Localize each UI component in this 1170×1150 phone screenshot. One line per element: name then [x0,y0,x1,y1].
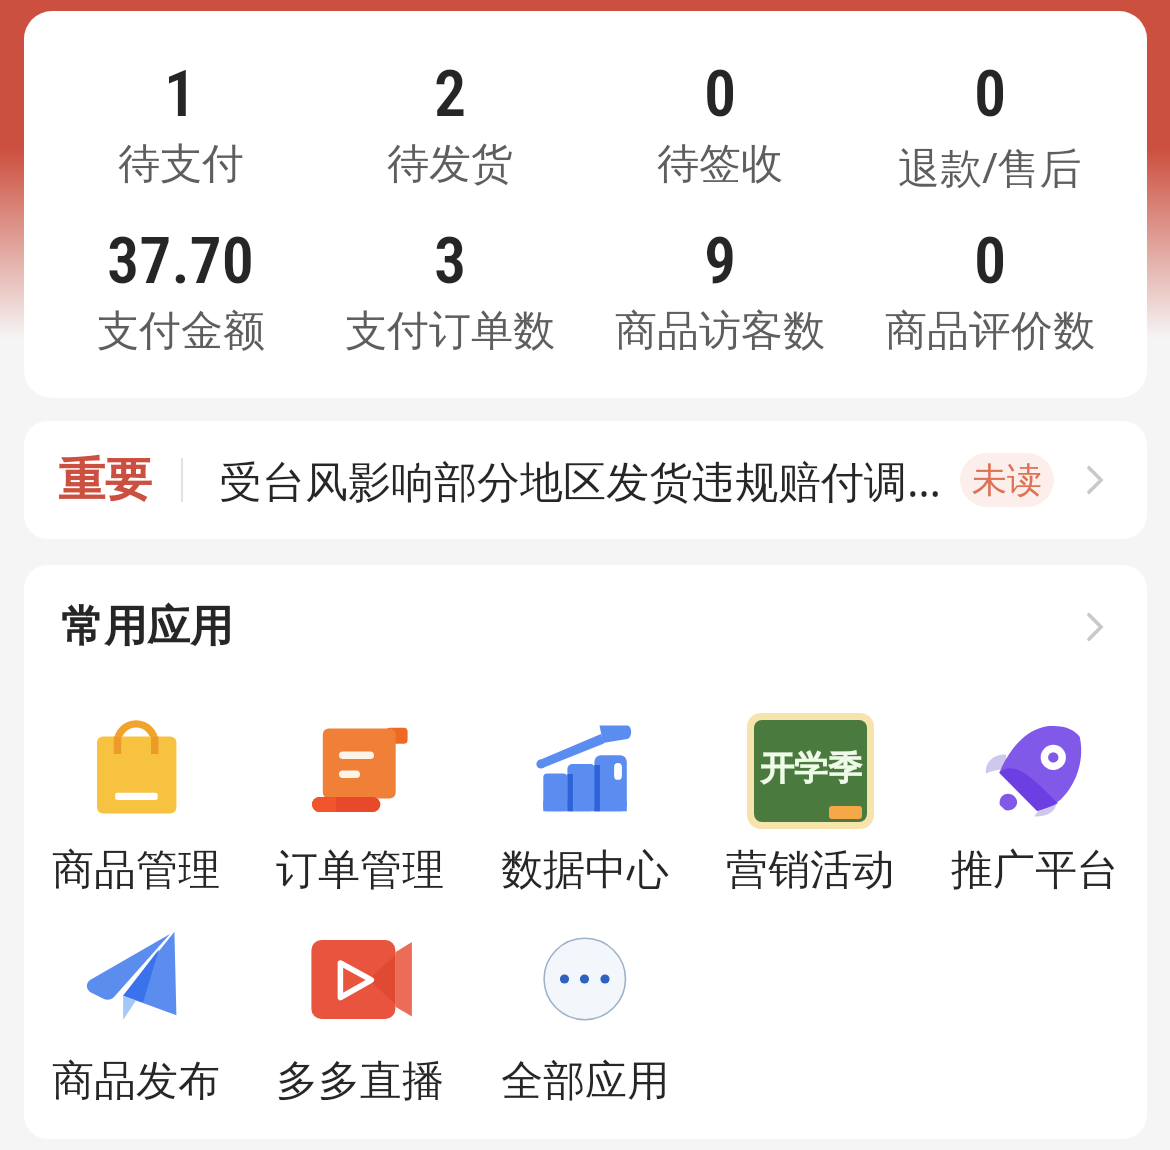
staticText: 推广平台 [951,844,1119,897]
staticText: 待签收 [657,138,783,191]
button[interactable]: 0 [585,57,855,191]
staticText: 商品评价数 [885,305,1095,358]
button[interactable]: 数据中心 [472,717,697,897]
staticText: 全部应用 [501,1055,669,1108]
staticText: 支付金额 [97,305,265,358]
button[interactable]: 重要 [24,421,1147,539]
staticText: 0 [704,57,737,132]
button[interactable]: 推广平台 [922,717,1147,897]
staticText: 退款/售后 [898,138,1082,195]
staticText: 支付订单数 [345,305,555,358]
staticText: 常用应用 [61,600,233,654]
button[interactable]: 1 [46,57,315,191]
staticText: 0 [974,224,1007,299]
staticText: 商品发布 [52,1055,220,1108]
button[interactable]: 0 [855,57,1125,195]
staticText: 商品管理 [52,844,220,897]
staticText: 受台风影响部分地区发货违规赔付调… [219,451,942,510]
staticText: 订单管理 [276,844,444,897]
button[interactable]: 9 [585,224,855,358]
staticText: 重要 [58,451,152,510]
staticText: 数据中心 [501,844,669,897]
staticText: 多多直播 [276,1055,444,1108]
staticText: 商品访客数 [615,305,825,358]
staticText: 待发货 [387,138,513,191]
button[interactable]: 2 [315,57,585,191]
staticText: 0 [974,57,1007,132]
button[interactable]: 商品发布 [24,928,248,1108]
staticText: 37.70 [107,224,254,299]
staticText: 9 [704,224,737,299]
button[interactable]: 商品管理 [24,717,248,897]
button[interactable]: 3 [315,224,585,358]
staticText: 未读 [972,458,1042,502]
staticText: 营销活动 [726,844,894,897]
staticText: 开学季 [760,747,862,790]
staticText: 待支付 [118,138,244,191]
staticText: 2 [434,57,467,132]
button[interactable]: 37.70 [46,224,315,358]
button[interactable]: 订单管理 [248,717,472,897]
staticText: 3 [434,224,467,299]
button[interactable]: 多多直播 [248,928,472,1108]
staticText: 1 [164,57,197,132]
button[interactable]: 常用应用 [24,599,1147,655]
button[interactable]: 0 [855,224,1125,358]
button[interactable]: 开学季 [697,717,922,897]
button[interactable]: 全部应用 [472,928,697,1108]
